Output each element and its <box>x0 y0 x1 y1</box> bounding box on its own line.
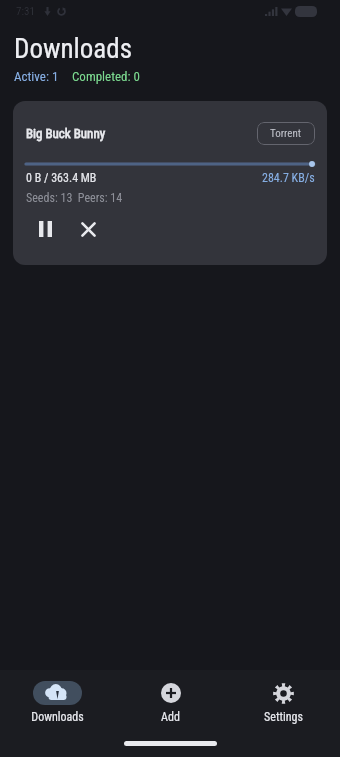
button[interactable]: Pause download <box>30 214 60 244</box>
staticText: Big Buck Bunny <box>26 126 249 141</box>
staticText: 7:31 <box>16 5 35 18</box>
button[interactable]: Add <box>114 681 227 724</box>
button[interactable]: Downloads <box>0 681 114 724</box>
button[interactable]: Settings <box>227 681 340 724</box>
staticText: Torrent <box>270 127 302 140</box>
staticText: Active: 1 <box>14 69 59 84</box>
button[interactable]: Torrent <box>257 122 315 145</box>
staticText: 0 B / 363.4 MB <box>26 171 97 185</box>
staticText: Completed: 0 <box>72 69 140 84</box>
staticText: Add <box>161 710 180 724</box>
button[interactable]: Big Buck Bunny <box>13 101 327 265</box>
staticText: Seeds: 13 Peers: 14 <box>26 191 123 205</box>
staticText: Settings <box>264 710 303 724</box>
staticText: Downloads <box>31 710 84 724</box>
staticText: 284.7 KB/s <box>262 171 315 185</box>
button[interactable]: Cancel download <box>73 214 103 244</box>
staticText: Downloads <box>14 33 132 65</box>
